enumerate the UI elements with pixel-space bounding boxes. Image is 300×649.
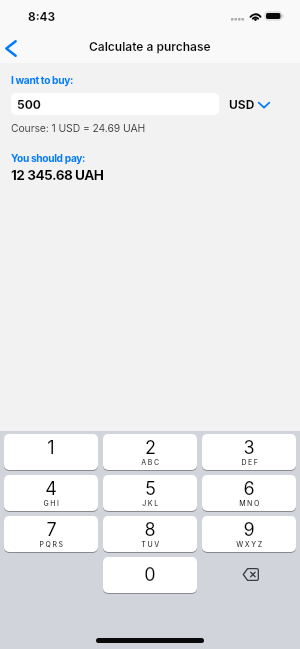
staticText: 3	[243, 437, 255, 459]
button[interactable]: 0	[103, 557, 197, 593]
button[interactable]: 6	[202, 475, 296, 511]
staticText: 7	[46, 519, 57, 541]
button[interactable]: 9	[202, 516, 296, 552]
staticText: 8:43	[28, 10, 56, 24]
staticText: 9	[243, 519, 255, 541]
button[interactable]: 2	[103, 434, 197, 470]
staticText: 12 345.68 UAH	[11, 167, 104, 183]
staticText: GHI	[43, 499, 61, 507]
staticText: 8	[144, 519, 156, 541]
button[interactable]: USD	[229, 93, 270, 115]
staticText: 500	[17, 97, 41, 112]
staticText: ABC	[141, 458, 161, 466]
button[interactable]: 8	[103, 516, 197, 552]
button[interactable]: 3	[202, 434, 296, 470]
staticText: PQRS	[39, 540, 65, 548]
staticText: 6	[243, 478, 255, 500]
staticText: Calculate a purchase	[89, 39, 211, 54]
button[interactable]: 500	[11, 93, 219, 115]
staticText: 4	[45, 478, 57, 500]
button[interactable]: 1	[4, 434, 98, 470]
button[interactable]: 7	[4, 516, 98, 552]
staticText: JKL	[142, 499, 160, 507]
button[interactable]: Backspace	[202, 557, 296, 593]
staticText: 5	[145, 478, 156, 500]
staticText: 2	[145, 437, 156, 459]
staticText: 0	[144, 564, 156, 586]
staticText: WXYZ	[236, 540, 264, 548]
staticText: I want to buy:	[11, 74, 74, 86]
staticText: 1	[47, 437, 55, 459]
staticText: USD	[229, 97, 255, 112]
staticText: MNO	[239, 499, 261, 507]
staticText: You should pay:	[11, 152, 86, 164]
staticText: TUV	[141, 540, 161, 548]
button[interactable]: 4	[4, 475, 98, 511]
staticText: Course: 1 USD = 24.69 UAH	[11, 122, 146, 135]
button[interactable]: Back	[0, 31, 30, 63]
button[interactable]: 5	[103, 475, 197, 511]
staticText: DEF	[241, 458, 260, 466]
